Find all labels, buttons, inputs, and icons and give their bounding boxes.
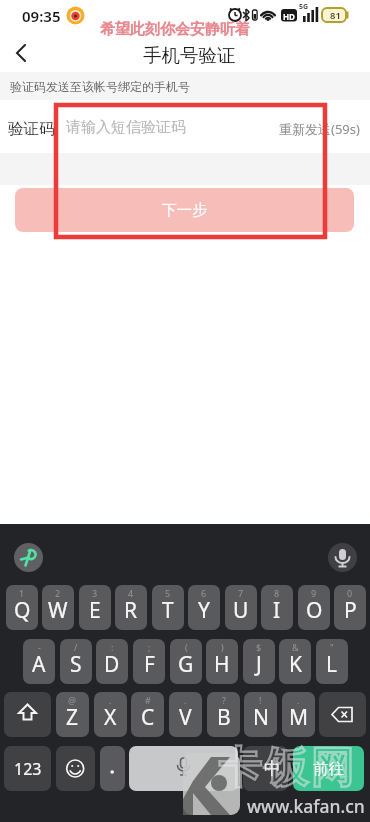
- staticText: 验证码:: [8, 117, 59, 138]
- staticText: .: [297, 694, 300, 706]
- staticText: 请输入短信验证码: [66, 118, 186, 137]
- staticText: H: [214, 650, 230, 679]
- button[interactable]: 0: [334, 585, 366, 630]
- staticText: 中: [264, 758, 281, 779]
- staticText: D: [104, 650, 120, 679]
- button[interactable]: ?: [207, 692, 240, 737]
- staticText: M: [289, 703, 309, 732]
- button[interactable]: [319, 692, 366, 737]
- button[interactable]: 5: [152, 585, 184, 630]
- button[interactable]: ;: [133, 639, 165, 684]
- button[interactable]: 4: [115, 585, 147, 630]
- staticText: .: [109, 694, 112, 706]
- staticText: X: [104, 703, 117, 732]
- button[interactable]: &: [279, 639, 311, 684]
- staticText: 1: [19, 587, 25, 599]
- staticText: 5: [165, 587, 171, 599]
- staticText: I: [273, 596, 281, 625]
- button[interactable]: .: [169, 692, 202, 737]
- staticText: U: [233, 596, 249, 625]
- staticText: F: [144, 650, 155, 679]
- staticText: J: [256, 650, 262, 679]
- staticText: R: [124, 596, 138, 625]
- staticText: &: [292, 641, 299, 653]
- staticText: O: [306, 596, 323, 625]
- staticText: 卡饭网: [217, 742, 355, 795]
- button[interactable]: 下一步: [15, 188, 354, 232]
- staticText: !: [259, 694, 262, 706]
- button[interactable]: 2: [42, 585, 74, 630]
- button[interactable]: 123: [4, 746, 51, 791]
- staticText: 09:35: [22, 6, 61, 26]
- staticText: 验证码发送至该帐号绑定的手机号: [10, 79, 190, 94]
- staticText: -: [38, 641, 41, 653]
- button[interactable]: [129, 746, 238, 791]
- staticText: 前往: [313, 759, 344, 779]
- staticText: Y: [198, 596, 210, 625]
- staticText: 7: [238, 587, 244, 599]
- button[interactable]: !: [244, 692, 277, 737]
- button[interactable]: .: [94, 692, 127, 737]
- staticText: 9: [311, 587, 317, 599]
- button[interactable]: (: [170, 639, 202, 684]
- staticText: www.kafan.cn: [247, 794, 365, 818]
- staticText: :: [111, 641, 114, 653]
- staticText: #: [145, 694, 151, 706]
- button[interactable]: 前往: [293, 746, 364, 791]
- staticText: 0: [347, 587, 353, 599]
- staticText: P: [344, 596, 357, 625]
- button[interactable]: [4, 692, 51, 737]
- button[interactable]: 中: [243, 746, 288, 791]
- staticText: /: [74, 641, 78, 653]
- staticText: ?: [222, 694, 226, 706]
- button[interactable]: ): [206, 639, 238, 684]
- staticText: 8: [274, 587, 280, 599]
- button[interactable]: /: [60, 639, 92, 684]
- staticText: 手机号验证: [143, 44, 236, 67]
- staticText: V: [179, 703, 192, 732]
- staticText: 6: [201, 587, 207, 599]
- staticText: @: [68, 694, 77, 706]
- button[interactable]: -: [23, 639, 55, 684]
- button[interactable]: @: [56, 692, 89, 737]
- button[interactable]: [56, 746, 95, 791]
- button[interactable]: #: [131, 692, 164, 737]
- staticText: 4: [128, 587, 134, 599]
- staticText: $: [256, 641, 262, 653]
- staticText: 5G: [299, 2, 309, 12]
- staticText: 81: [330, 9, 341, 22]
- staticText: 123: [14, 758, 42, 780]
- button[interactable]: $: [243, 639, 275, 684]
- staticText: G: [178, 650, 194, 679]
- staticText: ": [330, 641, 334, 653]
- staticText: N: [253, 703, 269, 732]
- staticText: 2: [55, 587, 61, 599]
- button[interactable]: 8: [261, 585, 293, 630]
- button[interactable]: 9: [298, 585, 330, 630]
- staticText: Q: [14, 596, 31, 625]
- button[interactable]: 3: [79, 585, 111, 630]
- button[interactable]: .: [282, 692, 315, 737]
- staticText: K: [289, 650, 302, 679]
- staticText: (: [185, 641, 188, 653]
- staticText: .: [184, 694, 187, 706]
- button[interactable]: [100, 746, 125, 791]
- button[interactable]: 7: [225, 585, 257, 630]
- button[interactable]: 6: [188, 585, 220, 630]
- button[interactable]: [4, 40, 38, 66]
- staticText: 重新发送(59s): [279, 120, 360, 138]
- button[interactable]: :: [96, 639, 128, 684]
- staticText: ): [221, 641, 224, 653]
- staticText: A: [32, 650, 46, 679]
- staticText: W: [48, 596, 68, 625]
- staticText: T: [162, 596, 174, 625]
- staticText: 希望此刻你会安静听着: [100, 20, 250, 39]
- staticText: C: [141, 703, 155, 732]
- button[interactable]: 1: [6, 585, 38, 630]
- button[interactable]: [14, 543, 43, 572]
- staticText: B: [217, 703, 231, 732]
- button[interactable]: [328, 543, 357, 572]
- staticText: L: [326, 650, 338, 679]
- staticText: Z: [66, 703, 79, 732]
- button[interactable]: ": [316, 639, 348, 684]
